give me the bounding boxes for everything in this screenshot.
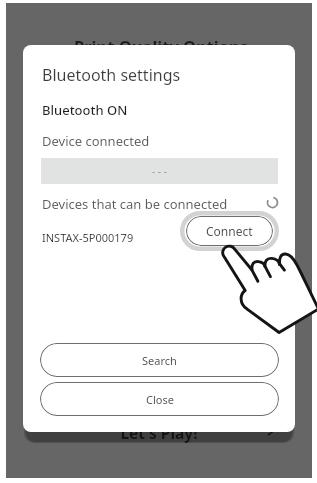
staticText: Connect — [206, 223, 253, 239]
staticText: Devices that can be connected — [42, 195, 228, 213]
staticText: Bluetooth ON — [42, 101, 128, 119]
staticText: Close — [146, 392, 174, 407]
staticText: - - - — [152, 164, 167, 178]
staticText: Device connected — [42, 132, 150, 150]
staticText: Bluetooth settings — [42, 64, 181, 86]
button[interactable]: Close — [40, 382, 279, 416]
button[interactable]: Search — [40, 343, 279, 377]
staticText: INSTAX-5P000179 — [42, 230, 134, 245]
other: Tap Connect — [215, 240, 317, 340]
button[interactable]: Connect — [186, 216, 273, 246]
staticText: Print Quality Options — [8, 35, 314, 57]
staticText: Search — [142, 353, 177, 368]
button[interactable]: Let's Play! — [6, 418, 312, 446]
staticText: Let's Play! — [6, 422, 312, 443]
